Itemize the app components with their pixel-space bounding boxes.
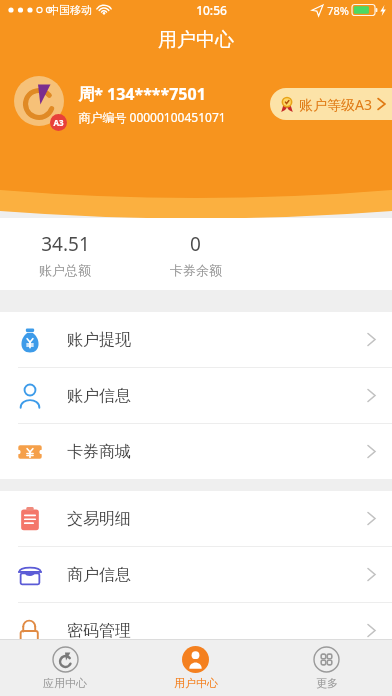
staticText: A3 xyxy=(53,117,64,128)
staticText: 账户信息 xyxy=(67,386,131,406)
staticText: 应用中心 xyxy=(43,676,87,690)
button[interactable]: 密码管理 xyxy=(0,603,392,658)
staticText: 账户提现 xyxy=(67,330,131,350)
staticText: 商户编号 00000100451071 xyxy=(78,109,226,125)
button[interactable]: 卡券商城 xyxy=(0,424,392,479)
button[interactable]: 账户等级A3 xyxy=(270,88,392,120)
button[interactable]: 交易明细 xyxy=(0,491,392,546)
staticText: 卡券商城 xyxy=(67,442,131,462)
staticText: 中国移动 xyxy=(48,3,92,17)
button[interactable]: 用户中心 xyxy=(130,640,261,696)
staticText: 商户信息 xyxy=(67,565,131,585)
staticText: 用户中心 xyxy=(158,28,234,52)
staticText: 密码管理 xyxy=(67,621,131,641)
staticText: 更多 xyxy=(316,676,338,690)
staticText: 34.51 xyxy=(41,231,90,257)
staticText: 账户总额 xyxy=(39,262,91,278)
button[interactable]: 账户信息 xyxy=(0,368,392,423)
button[interactable]: 商户信息 xyxy=(0,547,392,602)
button[interactable]: 应用中心 xyxy=(0,640,130,696)
button[interactable]: 更多 xyxy=(261,640,392,696)
staticText: 10:56 xyxy=(196,2,227,18)
staticText: 卡券余额 xyxy=(170,262,222,278)
staticText: 78% xyxy=(327,3,349,18)
staticText: 0 xyxy=(190,231,201,257)
staticText: 交易明细 xyxy=(67,509,131,529)
staticText: 用户中心 xyxy=(174,676,218,690)
staticText: 账户等级A3 xyxy=(299,95,372,114)
button[interactable]: 账户提现 xyxy=(0,312,392,367)
staticText: 周* 134****7501 xyxy=(78,83,206,105)
